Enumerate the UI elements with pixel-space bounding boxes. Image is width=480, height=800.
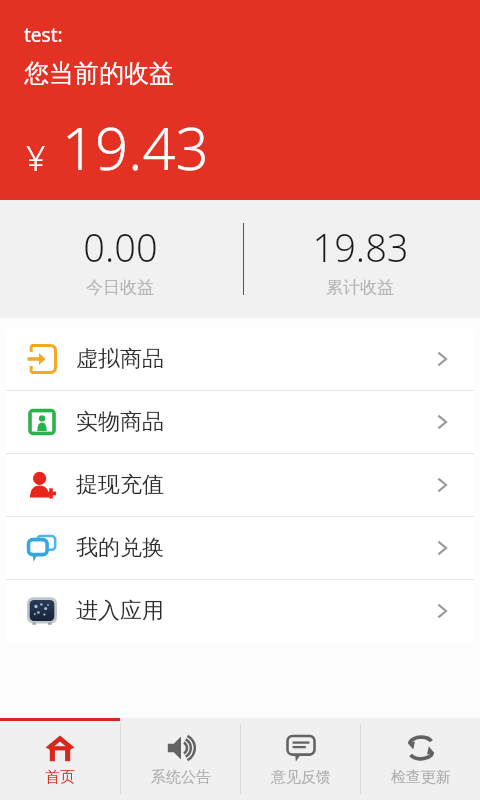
staticText: test: [24,22,63,48]
staticText: 意见反馈 [271,768,331,787]
button[interactable]: 我的兑换 [6,517,474,579]
staticText: 首页 [45,768,75,787]
staticText: 进入应用 [76,597,164,625]
staticText: ¥ [26,135,46,181]
button[interactable]: 提现充值 [6,454,474,516]
staticText: 累计收益 [326,277,394,298]
staticText: 0.00 [83,221,158,273]
button[interactable]: 进入应用 [6,580,474,642]
staticText: 虚拟商品 [76,345,164,373]
staticText: 今日收益 [86,277,154,298]
staticText: 您当前的收益 [24,58,174,89]
button[interactable]: 系统公告 [121,718,240,800]
button[interactable]: 意见反馈 [241,718,360,800]
button[interactable]: 实物商品 [6,391,474,453]
button[interactable]: 首页 [0,718,120,800]
staticText: 检查更新 [391,768,451,787]
staticText: 系统公告 [151,768,211,787]
staticText: 实物商品 [76,408,164,436]
button[interactable]: 虚拟商品 [6,328,474,390]
button[interactable]: 检查更新 [361,718,480,800]
staticText: 19.83 [312,221,409,273]
staticText: 提现充值 [76,471,164,499]
staticText: 我的兑换 [76,534,164,562]
staticText: 19.43 [62,108,209,187]
